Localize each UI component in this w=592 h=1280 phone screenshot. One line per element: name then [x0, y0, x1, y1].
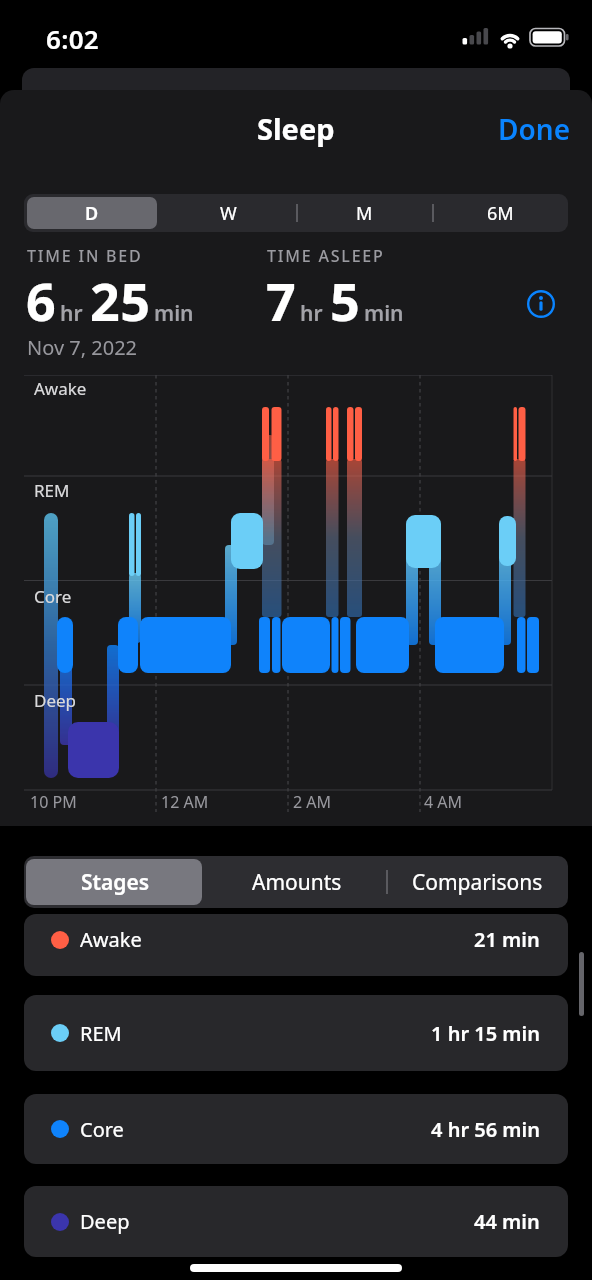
- staticText: 6:02: [46, 21, 99, 56]
- staticText: Sleep: [257, 109, 335, 148]
- staticText: 25: [90, 265, 151, 336]
- staticText: 10 PM: [30, 791, 77, 813]
- staticText: 21 min: [474, 926, 540, 953]
- staticText: hr: [300, 299, 323, 328]
- staticText: Stages: [81, 868, 150, 897]
- staticText: min: [154, 299, 194, 328]
- staticText: 6M: [487, 201, 514, 226]
- staticText: Deep: [80, 1208, 130, 1235]
- staticText: Deep: [34, 689, 77, 712]
- button[interactable]: W: [160, 194, 296, 232]
- staticText: D: [85, 201, 99, 226]
- staticText: 1 hr 15 min: [431, 1020, 540, 1047]
- staticText: M: [356, 201, 373, 226]
- staticText: REM: [80, 1020, 122, 1047]
- staticText: Core: [80, 1116, 124, 1143]
- staticText: hr: [60, 299, 83, 328]
- staticText: 44 min: [474, 1208, 540, 1235]
- button[interactable]: [525, 288, 557, 320]
- staticText: Amounts: [252, 868, 342, 897]
- button[interactable]: Done: [490, 105, 574, 149]
- staticText: TIME ASLEEP: [267, 245, 385, 267]
- button[interactable]: M: [296, 194, 432, 232]
- staticText: 7: [266, 265, 297, 336]
- staticText: 5: [330, 265, 361, 336]
- staticText: Nov 7, 2022: [27, 334, 138, 361]
- button[interactable]: 6M: [432, 194, 568, 232]
- staticText: Comparisons: [412, 868, 543, 897]
- button[interactable]: Awake: [24, 914, 568, 976]
- button[interactable]: REM: [24, 995, 568, 1071]
- button[interactable]: D: [24, 194, 160, 232]
- staticText: 4 hr 56 min: [431, 1116, 540, 1143]
- button[interactable]: Stages: [24, 856, 206, 908]
- staticText: W: [220, 201, 237, 226]
- button[interactable]: Comparisons: [387, 856, 568, 908]
- staticText: 12 AM: [161, 791, 209, 813]
- button[interactable]: Deep: [24, 1186, 568, 1257]
- staticText: Awake: [80, 926, 142, 953]
- staticText: 4 AM: [424, 791, 463, 813]
- button[interactable]: Amounts: [206, 856, 387, 908]
- staticText: min: [364, 299, 404, 328]
- staticText: Done: [498, 110, 571, 148]
- staticText: 2 AM: [293, 791, 332, 813]
- staticText: Core: [34, 585, 72, 608]
- staticText: TIME IN BED: [27, 245, 143, 267]
- staticText: REM: [34, 479, 70, 502]
- button[interactable]: Core: [24, 1094, 568, 1164]
- staticText: Awake: [34, 377, 87, 400]
- staticText: 6: [26, 265, 57, 336]
